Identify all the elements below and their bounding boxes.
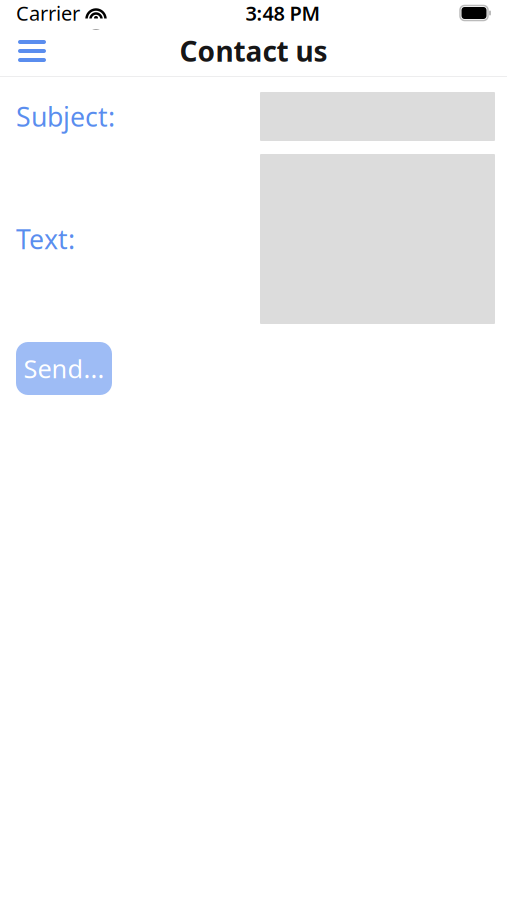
staticText: 3:48 PM (245, 0, 320, 26)
staticText: Subject: (16, 99, 115, 134)
staticText: Contact us (179, 32, 327, 70)
staticText: Carrier (16, 0, 80, 26)
button[interactable]: Menu (10, 29, 54, 73)
button[interactable]: Send... (16, 342, 112, 395)
staticText: Text: (16, 221, 75, 257)
staticText: Send... (23, 352, 104, 385)
